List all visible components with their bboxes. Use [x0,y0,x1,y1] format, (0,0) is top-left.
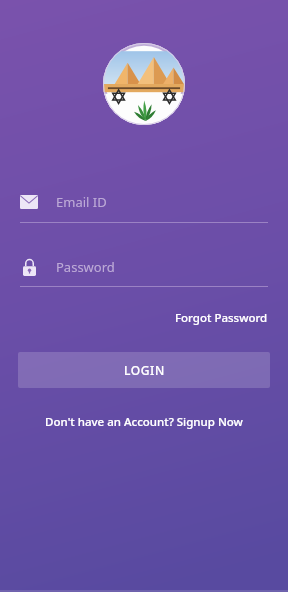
staticText: Forgot Password [175,310,268,326]
button[interactable]: Email [20,187,268,217]
staticText: LOGIN [124,362,165,378]
button[interactable]: Forgot Password [171,307,272,329]
button[interactable]: LOGIN [18,352,270,388]
staticText: Don't have an Account? Signup Now [45,414,243,430]
staticText: Password [56,258,115,276]
button[interactable]: Don't have an Account? Signup Now [39,410,249,434]
other: Password [23,259,36,276]
button[interactable]: Password [20,252,268,282]
other: App logo [103,43,185,125]
staticText: Email ID [56,193,107,211]
other: Email [20,195,38,209]
